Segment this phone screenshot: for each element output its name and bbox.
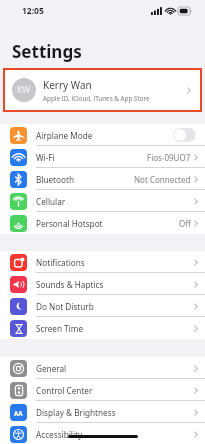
staticText: Screen Time bbox=[36, 323, 84, 334]
button[interactable]: Accessibility bbox=[0, 423, 205, 444]
staticText: Do Not Disturb bbox=[36, 301, 94, 312]
staticText: Accessibility bbox=[36, 429, 83, 440]
staticText: AA bbox=[14, 409, 23, 417]
staticText: Bluetooth bbox=[36, 174, 74, 185]
staticText: Personal Hotspot bbox=[36, 218, 103, 229]
button[interactable]: Control Center bbox=[0, 379, 205, 401]
staticText: 12:05 bbox=[22, 5, 44, 17]
button[interactable]: Notifications bbox=[0, 251, 205, 273]
staticText: Sounds & Haptics bbox=[36, 279, 104, 290]
staticText: Fios-09UO7 bbox=[147, 152, 191, 163]
staticText: Settings bbox=[12, 40, 82, 63]
staticText: Cellular bbox=[36, 196, 66, 207]
button[interactable]: General bbox=[0, 357, 205, 379]
button[interactable]: AA bbox=[0, 401, 205, 423]
staticText: Display & Brightness bbox=[36, 407, 116, 418]
staticText: Not Connected bbox=[134, 174, 191, 185]
staticText: Apple ID, iCloud, iTunes & App Store bbox=[43, 94, 150, 103]
staticText: General bbox=[36, 363, 67, 374]
button[interactable]: Cellular bbox=[0, 190, 205, 212]
button[interactable]: Sounds & Haptics bbox=[0, 273, 205, 295]
staticText: KW bbox=[17, 84, 31, 96]
staticText: Off bbox=[179, 218, 191, 229]
button[interactable]: Personal Hotspot bbox=[0, 212, 205, 234]
staticText: Control Center bbox=[36, 385, 93, 396]
button[interactable]: Airplane Mode toggle bbox=[173, 128, 196, 142]
staticText: Airplane Mode bbox=[36, 130, 93, 141]
staticText: Notifications bbox=[36, 257, 85, 268]
button[interactable]: Screen Time bbox=[0, 317, 205, 339]
button[interactable]: Do Not Disturb bbox=[0, 295, 205, 317]
staticText: Kerry Wan bbox=[43, 78, 92, 92]
button[interactable]: Airplane Mode bbox=[0, 124, 205, 146]
button[interactable]: KW bbox=[5, 70, 200, 110]
button[interactable]: Bluetooth bbox=[0, 168, 205, 190]
staticText: Wi-Fi bbox=[36, 152, 55, 163]
button[interactable]: Wi-Fi bbox=[0, 146, 205, 168]
